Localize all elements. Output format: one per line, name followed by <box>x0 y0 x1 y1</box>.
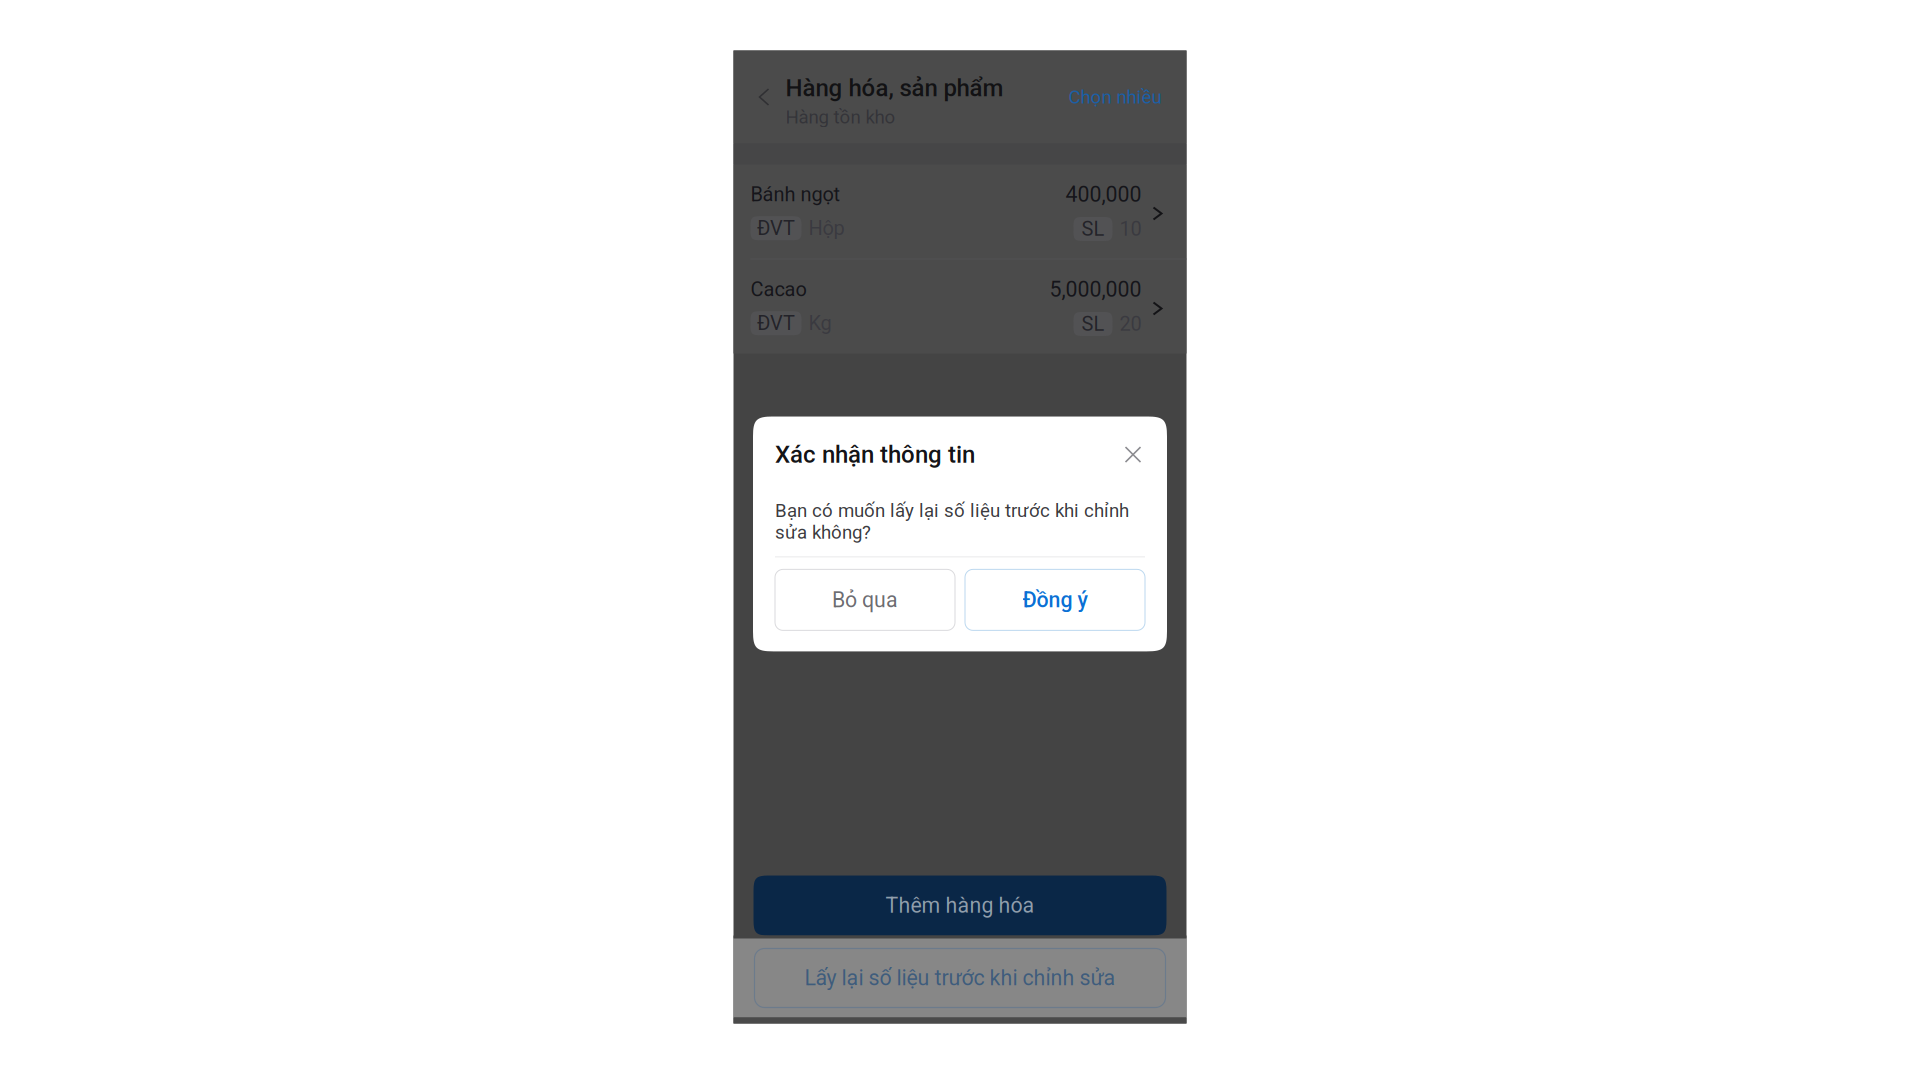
staticText: Hàng tồn kho <box>785 106 895 128</box>
staticText: ĐVT <box>757 311 795 335</box>
staticText: 10 <box>1119 217 1141 241</box>
staticText: SL <box>1081 312 1104 336</box>
staticText: SL <box>1081 217 1104 241</box>
staticText: Cacao <box>750 278 806 301</box>
button[interactable]: Cacao <box>733 259 1186 353</box>
button[interactable]: Back <box>749 68 778 126</box>
staticText: Xác nhận thông tin <box>775 440 975 469</box>
button[interactable]: Thêm hàng hóa <box>753 875 1166 935</box>
staticText: 5,000,000 <box>1049 277 1141 302</box>
button[interactable]: Close <box>1121 443 1145 467</box>
button[interactable]: Chọn nhiều <box>1058 68 1186 126</box>
staticText: Bạn có muốn lấy lại số liệu trước khi ch… <box>775 500 1129 543</box>
staticText: ĐVT <box>757 216 795 240</box>
staticText: 400,000 <box>1065 182 1141 207</box>
staticText: Lấy lại số liệu trước khi chỉnh sửa <box>804 965 1115 990</box>
staticText: Chọn nhiều <box>1068 86 1161 108</box>
button[interactable]: Bánh ngọt <box>733 164 1186 258</box>
staticText: 20 <box>1119 312 1141 336</box>
button[interactable]: Lấy lại số liệu trước khi chỉnh sửa <box>754 948 1165 1007</box>
staticText: Đồng ý <box>1022 587 1087 612</box>
staticText: Hộp <box>808 216 844 240</box>
staticText: Bánh ngọt <box>750 183 840 206</box>
button[interactable]: Đồng ý <box>965 569 1145 630</box>
staticText: Hàng hóa, sản phẩm <box>785 74 1003 102</box>
staticText: Bỏ qua <box>832 587 898 612</box>
staticText: Kg <box>808 311 831 335</box>
button[interactable]: Bỏ qua <box>775 569 955 630</box>
staticText: Thêm hàng hóa <box>885 893 1034 918</box>
